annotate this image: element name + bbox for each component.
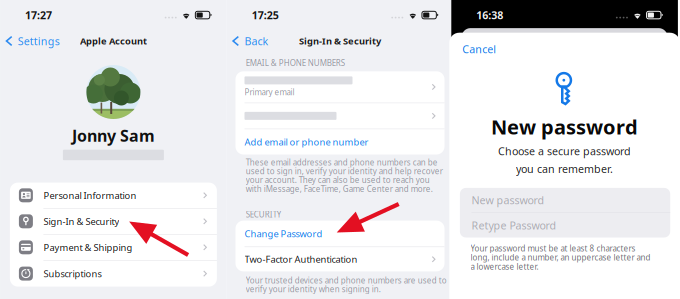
staticText: Jonny Sam	[72, 125, 155, 146]
button[interactable]: Change Password	[235, 221, 444, 246]
staticText: These email addresses and phone numbers …	[246, 157, 443, 194]
staticText: Change Password	[244, 227, 322, 240]
staticText: Personal Information	[43, 189, 136, 201]
button[interactable]: Payment & Shipping	[10, 235, 217, 261]
button[interactable]: Two-Factor Authentication	[235, 247, 444, 271]
staticText: 17:25	[252, 8, 279, 22]
button[interactable]: Cancel	[451, 40, 506, 58]
button[interactable]: Settings	[0, 31, 66, 51]
staticText: Your trusted devices and phone numbers a…	[246, 275, 447, 294]
staticText: Primary email	[244, 87, 294, 97]
staticText: Retype Password	[471, 218, 556, 232]
staticText: Apple Account	[80, 35, 147, 47]
staticText: Sign-In & Security	[43, 215, 119, 227]
button[interactable]: Primary email	[235, 71, 444, 103]
staticText: you can remember.	[516, 162, 613, 176]
button[interactable]: Subscriptions	[10, 261, 217, 287]
button[interactable]	[235, 103, 444, 129]
staticText: 17:27	[25, 8, 52, 22]
staticText: SECURITY	[246, 209, 282, 220]
staticText: Subscriptions	[43, 267, 101, 280]
button[interactable]: Sign-In & Security	[10, 209, 217, 235]
staticText: Payment & Shipping	[43, 241, 132, 253]
staticText: Your password must be at least 8 charact…	[470, 243, 650, 272]
staticText: Back	[244, 34, 268, 48]
staticText: Sign-In & Security	[299, 35, 381, 47]
staticText: Settings	[18, 34, 60, 48]
staticText: 16:38	[476, 8, 503, 22]
button[interactable]: Back	[227, 31, 274, 51]
staticText: New password	[491, 113, 638, 140]
staticText: Add email or phone number	[244, 136, 368, 148]
button[interactable]: Personal Information	[10, 183, 217, 209]
staticText: Two-Factor Authentication	[244, 253, 357, 265]
staticText: Choose a secure password	[498, 144, 631, 158]
staticText: New password	[471, 193, 544, 207]
staticText: Cancel	[462, 42, 496, 56]
staticText: EMAIL & PHONE NUMBERS	[246, 57, 345, 68]
button[interactable]: Add email or phone number	[235, 129, 444, 154]
